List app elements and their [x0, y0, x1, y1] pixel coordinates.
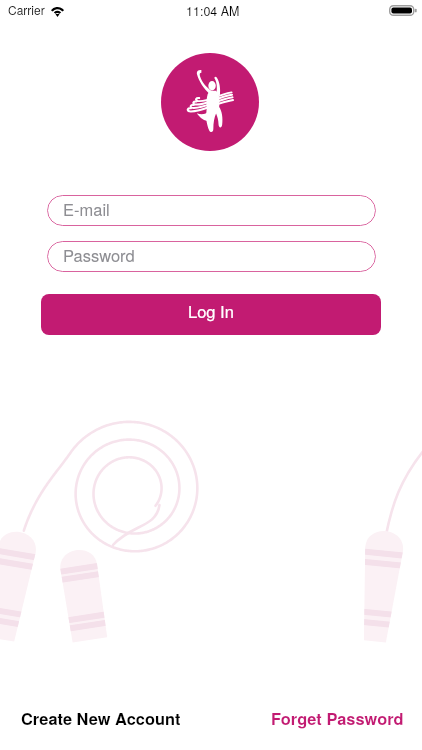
- staticText: Forget Password: [271, 707, 404, 730]
- button[interactable]: Password: [47, 241, 376, 272]
- staticText: Create New Account: [21, 707, 181, 730]
- staticText: Log In: [188, 299, 234, 323]
- staticText: 11:04 AM: [186, 2, 240, 20]
- button[interactable]: Log In: [41, 294, 381, 335]
- button[interactable]: Create New Account: [21, 707, 181, 730]
- button[interactable]: Forget Password: [271, 707, 404, 730]
- button[interactable]: E-mail: [47, 195, 376, 226]
- staticText: Password: [63, 243, 135, 267]
- staticText: E-mail: [63, 197, 110, 221]
- staticText: Carrier: [8, 1, 45, 18]
